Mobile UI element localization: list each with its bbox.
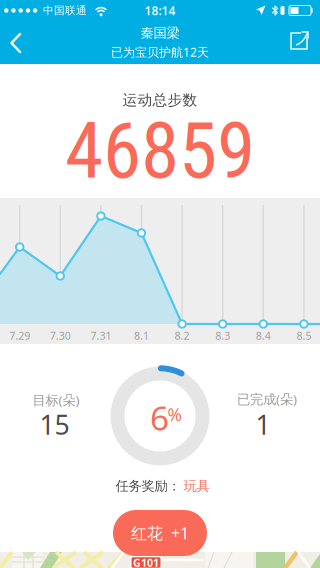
- staticText: G101: [133, 555, 159, 568]
- staticText: 8.5: [296, 328, 311, 343]
- staticText: 7.31: [90, 328, 111, 343]
- staticText: 8.4: [256, 328, 271, 343]
- staticText: %: [167, 403, 181, 426]
- staticText: 8.2: [175, 328, 190, 343]
- button[interactable]: Back: [0, 21, 44, 65]
- staticText: 15: [39, 407, 69, 442]
- staticText: 中国联通: [43, 4, 87, 17]
- staticText: 秦国梁: [140, 25, 179, 41]
- staticText: 已为宝贝护航12天: [111, 44, 209, 60]
- staticText: 46859: [65, 106, 255, 196]
- staticText: 1: [255, 407, 270, 442]
- staticText: 6: [150, 395, 169, 440]
- staticText: 18:14: [144, 2, 175, 18]
- staticText: 已完成(朵): [237, 390, 297, 408]
- button[interactable]: 红花 +1: [113, 510, 207, 556]
- staticText: 任务奖励：: [115, 478, 180, 494]
- staticText: 7.29: [9, 328, 30, 343]
- staticText: 玩具: [183, 478, 209, 494]
- staticText: 红花 +1: [131, 522, 189, 544]
- staticText: 8.3: [215, 328, 230, 343]
- staticText: 目标(朵): [32, 391, 79, 409]
- staticText: 7.30: [50, 328, 71, 343]
- staticText: 运动总步数: [122, 91, 197, 109]
- staticText: 8.1: [134, 328, 149, 343]
- button[interactable]: Share: [277, 19, 320, 63]
